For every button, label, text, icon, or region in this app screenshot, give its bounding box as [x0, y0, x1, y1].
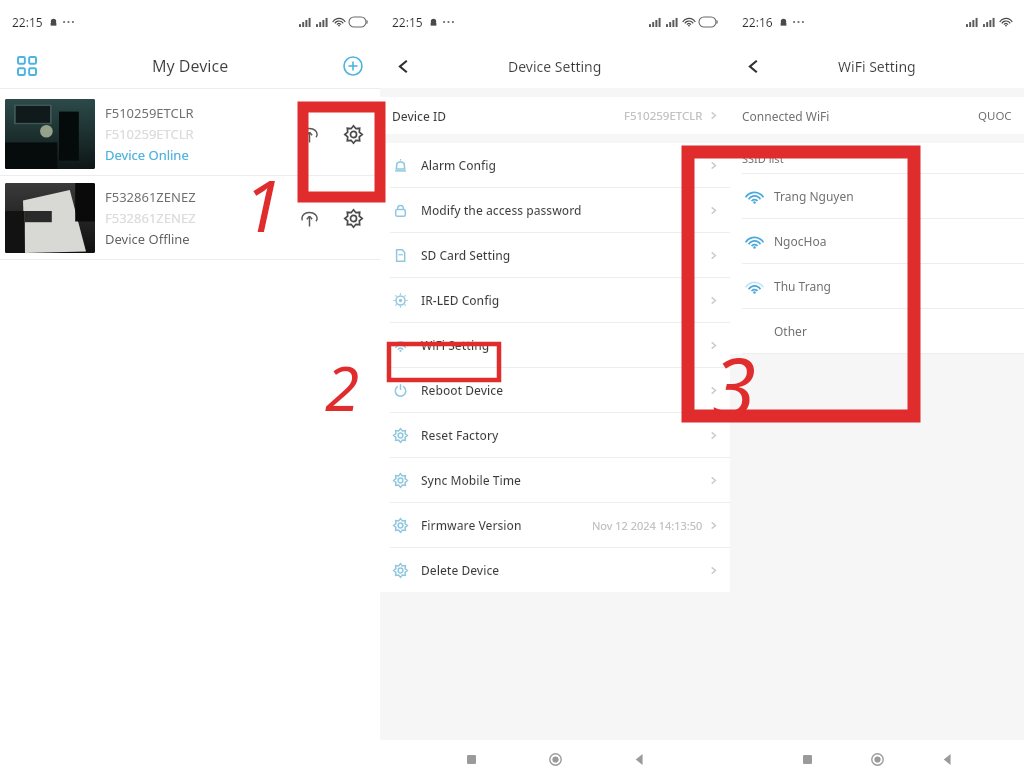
staticText: F510259ETCLR [105, 125, 194, 143]
button[interactable]: Home [540, 744, 570, 774]
staticText: Sync Mobile Time [421, 472, 521, 488]
button[interactable]: Trang Nguyen [730, 174, 1024, 218]
button[interactable]: IR-LED Config [380, 278, 730, 322]
staticText: 3 [712, 330, 757, 439]
button[interactable]: Add device [336, 49, 370, 83]
staticText: Device Offline [105, 230, 190, 248]
staticText: My Device [152, 55, 229, 77]
button[interactable]: Sync Mobile Time [380, 458, 730, 502]
button[interactable]: Back [386, 49, 420, 83]
button[interactable]: Delete Device [380, 548, 730, 592]
staticText: SSID list [742, 151, 784, 166]
staticText: WiFi Setting [421, 337, 490, 353]
button[interactable]: Thu Trang [730, 264, 1024, 308]
staticText: Modify the access password [421, 202, 582, 218]
button[interactable]: Reboot Device [380, 368, 730, 412]
staticText: Reset Factory [421, 427, 499, 443]
staticText: Device Online [105, 146, 189, 164]
staticText: Trang Nguyen [774, 188, 854, 204]
button[interactable]: Firmware Version [380, 503, 730, 547]
button[interactable]: Device settings [336, 201, 370, 235]
button[interactable]: Reset Factory [380, 413, 730, 457]
button[interactable]: Grid view [10, 49, 44, 83]
button[interactable]: NgocHoa [730, 219, 1024, 263]
staticText: F532861ZENEZ [105, 188, 196, 206]
staticText: F510259ETCLR [624, 108, 703, 124]
staticText: Firmware Version [421, 517, 522, 533]
button[interactable]: Other [730, 309, 1024, 353]
staticText: Device ID [392, 108, 446, 124]
staticText: WiFi Setting [838, 57, 916, 76]
button[interactable]: SD Card Setting [380, 233, 730, 277]
button[interactable]: Alarm Config [380, 143, 730, 187]
button[interactable]: Cloud upload [292, 201, 326, 235]
staticText: F510259ETCLR [105, 104, 194, 122]
button[interactable]: Recent apps [792, 744, 822, 774]
staticText: 22:15 [12, 14, 43, 30]
staticText: QUOC [978, 108, 1012, 124]
staticText: Reboot Device [421, 382, 504, 398]
staticText: Device Setting [508, 57, 602, 76]
staticText: 22:16 [742, 14, 773, 30]
button[interactable]: Back [736, 49, 770, 83]
staticText: 22:15 [392, 14, 423, 30]
staticText: Thu Trang [774, 278, 831, 294]
button[interactable]: Cloud upload [292, 117, 326, 151]
button[interactable]: Modify the access password [380, 188, 730, 232]
button[interactable]: Connected WiFi [730, 97, 1024, 134]
staticText: Delete Device [421, 562, 500, 578]
button[interactable]: F532861ZENEZ [0, 176, 380, 259]
staticText: IR-LED Config [421, 292, 500, 308]
staticText: NgocHoa [774, 233, 827, 249]
button[interactable]: Device settings [336, 117, 370, 151]
button[interactable]: WiFi Setting [380, 323, 730, 367]
button[interactable]: F510259ETCLR [0, 92, 380, 175]
button[interactable]: Back [624, 744, 654, 774]
staticText: Nov 12 2024 14:13:50 [592, 518, 703, 533]
staticText: SD Card Setting [421, 247, 511, 263]
button[interactable]: Device ID [380, 97, 730, 134]
button[interactable]: Back [932, 744, 962, 774]
staticText: F532861ZENEZ [105, 209, 196, 227]
staticText: 2 [325, 345, 360, 429]
staticText: Connected WiFi [742, 108, 830, 124]
button[interactable]: Recent apps [456, 744, 486, 774]
staticText: 1 [243, 155, 283, 253]
staticText: Other [774, 323, 807, 339]
button[interactable]: Home [862, 744, 892, 774]
staticText: Alarm Config [421, 157, 496, 173]
